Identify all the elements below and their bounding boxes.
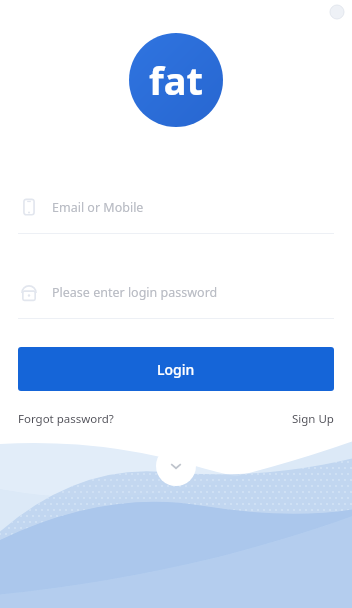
button[interactable]: Expand — [156, 446, 196, 486]
button[interactable]: Login — [18, 347, 334, 391]
button[interactable]: Email or Mobile — [0, 194, 352, 234]
staticText: Login — [157, 360, 195, 379]
staticText: Sign Up — [292, 411, 334, 427]
button[interactable]: Please enter login password — [0, 279, 352, 319]
other: Menu — [330, 5, 344, 19]
staticText: Email or Mobile — [52, 199, 144, 216]
staticText: Forgot password? — [18, 411, 114, 427]
staticText: fat — [149, 54, 203, 106]
button[interactable]: Sign Up — [292, 411, 334, 427]
button[interactable]: Forgot password? — [18, 411, 114, 427]
staticText: Please enter login password — [52, 284, 218, 301]
